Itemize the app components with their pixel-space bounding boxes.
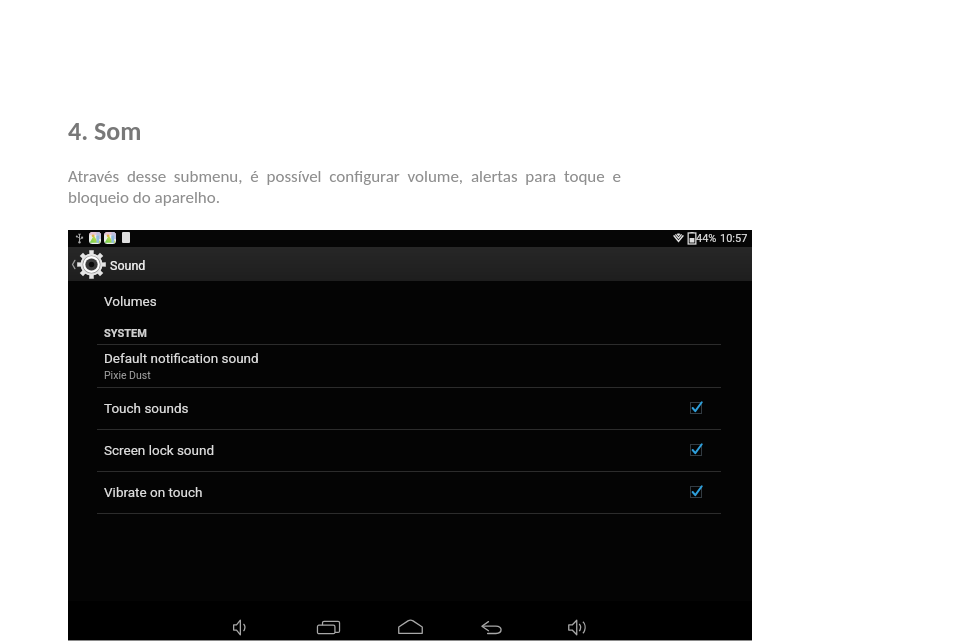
staticText: 10:57: [720, 232, 748, 245]
button[interactable]: Vibrate on touch, checked: [68, 472, 752, 513]
button[interactable]: Touch sounds, checked: [68, 388, 752, 429]
staticText: 44%: [696, 232, 717, 245]
staticText: Touch sounds: [104, 400, 189, 416]
staticText: SYSTEM: [104, 327, 147, 340]
button[interactable]: Default notification sound, Pixie Dust: [68, 345, 752, 387]
button[interactable]: Recent apps: [304, 601, 352, 641]
staticText: Sound: [110, 258, 146, 273]
button[interactable]: Back to Settings: [68, 247, 158, 281]
button[interactable]: Volume up: [553, 601, 601, 641]
button[interactable]: Home: [386, 601, 434, 641]
staticText: 4. Som: [68, 115, 142, 147]
staticText: Através desse submenu, é possível config…: [68, 166, 621, 208]
staticText: Pixie Dust: [104, 369, 151, 381]
button[interactable]: Volume down: [217, 601, 265, 641]
staticText: Vibrate on touch: [104, 484, 203, 500]
staticText: Volumes: [104, 293, 157, 309]
staticText: Default notification sound: [104, 350, 259, 366]
button[interactable]: Screen lock sound, checked: [68, 430, 752, 471]
button[interactable]: Back: [468, 601, 516, 641]
staticText: Screen lock sound: [104, 442, 215, 458]
button[interactable]: Volumes: [68, 302, 752, 344]
